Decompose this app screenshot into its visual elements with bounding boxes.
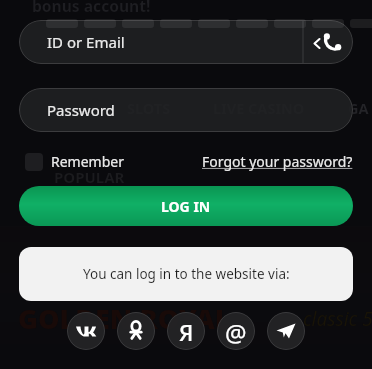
staticText: You can log in to the website via: bbox=[83, 265, 290, 283]
button[interactable]: Log in with Odnoklassniki bbox=[117, 312, 155, 350]
button[interactable]: Password bbox=[19, 88, 353, 132]
staticText: GOLDEN ROYAL bbox=[18, 300, 231, 337]
staticText: Я bbox=[179, 317, 194, 347]
button[interactable]: ID or Email bbox=[19, 20, 353, 64]
button[interactable]: Log in with Yandex bbox=[167, 312, 205, 350]
button[interactable]: Choose phone login bbox=[303, 20, 353, 64]
staticText: Password bbox=[47, 100, 115, 120]
button[interactable]: Remember bbox=[19, 152, 124, 171]
button[interactable]: Log in with Telegram bbox=[267, 312, 305, 350]
staticText: POPULAR bbox=[54, 167, 125, 187]
button[interactable]: Log in with Mail bbox=[217, 312, 255, 350]
button[interactable]: LOG IN bbox=[19, 186, 353, 226]
staticText: LOG IN bbox=[161, 197, 211, 216]
staticText: bonus account! bbox=[32, 0, 151, 16]
staticText: classic 5 b bbox=[303, 306, 372, 332]
staticText: GA bbox=[348, 98, 369, 118]
staticText: ID or Email bbox=[47, 32, 125, 52]
staticText: Remember bbox=[51, 152, 124, 171]
button[interactable]: Log in with VK bbox=[67, 312, 105, 350]
staticText: @ bbox=[225, 316, 247, 349]
button[interactable]: Forgot your password? bbox=[202, 152, 353, 171]
